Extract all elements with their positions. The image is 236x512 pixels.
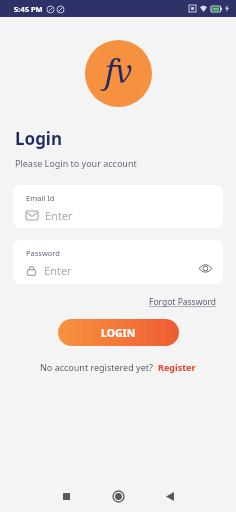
staticText: fv xyxy=(105,49,133,93)
staticText: Enter xyxy=(45,208,73,223)
staticText: LOGIN xyxy=(101,326,136,340)
button[interactable]: Password field xyxy=(13,240,223,284)
staticText: No account registered yet? xyxy=(40,361,153,373)
button[interactable]: Recent apps xyxy=(55,485,77,507)
staticText: 5:45 PM xyxy=(14,4,43,14)
staticText: Login xyxy=(15,127,63,150)
button[interactable]: Home xyxy=(107,485,129,507)
button[interactable]: Toggle password visibility xyxy=(197,260,213,276)
button[interactable]: Register xyxy=(158,361,196,373)
staticText: Forgot Password xyxy=(149,296,217,308)
button[interactable]: Back xyxy=(159,485,181,507)
staticText: Password xyxy=(26,248,60,258)
button[interactable]: Email field xyxy=(13,185,223,228)
button[interactable]: Forgot Password xyxy=(147,294,219,310)
button[interactable]: LOGIN xyxy=(58,319,179,346)
staticText: Register xyxy=(158,361,196,373)
staticText: Email Id xyxy=(26,193,55,203)
staticText: Please Login to your account xyxy=(15,157,137,169)
staticText: Enter xyxy=(44,263,72,278)
